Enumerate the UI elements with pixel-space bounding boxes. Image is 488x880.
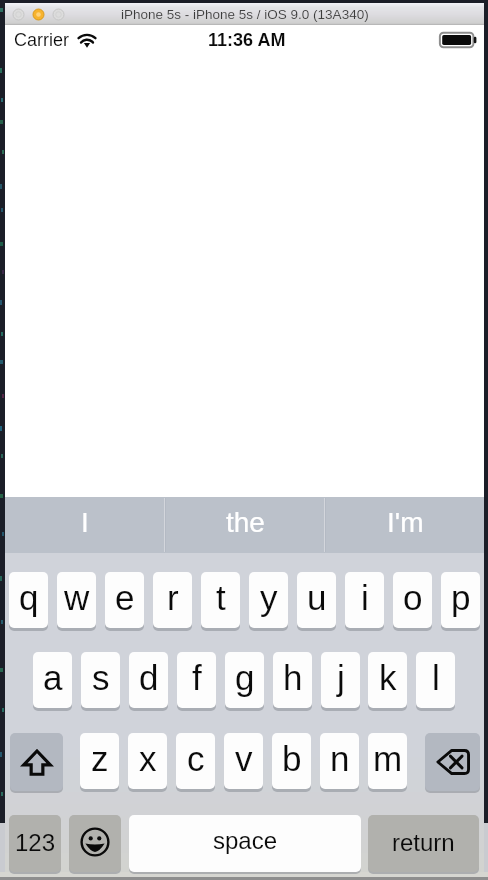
staticText: s bbox=[92, 658, 110, 697]
staticText: Carrier bbox=[14, 30, 70, 50]
staticText: p bbox=[451, 578, 471, 617]
staticText: m bbox=[373, 739, 403, 778]
staticText: j bbox=[337, 658, 345, 697]
staticText: u bbox=[307, 578, 327, 617]
staticText: y bbox=[260, 578, 278, 617]
staticText: I bbox=[81, 507, 89, 538]
staticText: the bbox=[226, 507, 265, 538]
button[interactable]: m bbox=[368, 733, 407, 791]
button[interactable]: the bbox=[166, 497, 324, 553]
staticText: g bbox=[235, 658, 255, 697]
button[interactable]: c bbox=[176, 733, 215, 791]
button[interactable]: Shift bbox=[10, 733, 63, 793]
button[interactable]: d bbox=[129, 652, 168, 710]
staticText: v bbox=[235, 739, 253, 778]
staticText: space bbox=[213, 827, 278, 854]
button[interactable]: Close window bbox=[13, 9, 24, 20]
button[interactable]: v bbox=[224, 733, 263, 791]
staticText: n bbox=[330, 739, 350, 778]
staticText: f bbox=[192, 658, 202, 697]
button[interactable]: a bbox=[33, 652, 72, 710]
staticText: 123 bbox=[15, 829, 56, 856]
button[interactable]: x bbox=[128, 733, 167, 791]
button[interactable]: Minimise window bbox=[33, 9, 44, 20]
button[interactable]: f bbox=[177, 652, 216, 710]
staticText: I'm bbox=[387, 507, 424, 538]
button[interactable]: I bbox=[5, 497, 164, 553]
staticText: r bbox=[167, 578, 179, 617]
staticText: t bbox=[216, 578, 226, 617]
button[interactable]: q bbox=[9, 572, 48, 630]
staticText: 11:36 AM bbox=[208, 30, 286, 50]
staticText: l bbox=[432, 658, 440, 697]
button[interactable]: z bbox=[80, 733, 119, 791]
button[interactable]: b bbox=[272, 733, 311, 791]
button[interactable]: space bbox=[129, 815, 361, 874]
button[interactable]: p bbox=[441, 572, 480, 630]
staticText: e bbox=[115, 578, 135, 617]
button[interactable]: l bbox=[416, 652, 455, 710]
button[interactable]: h bbox=[273, 652, 312, 710]
staticText: i bbox=[361, 578, 369, 617]
button[interactable]: g bbox=[225, 652, 264, 710]
button[interactable]: return bbox=[368, 815, 479, 874]
button[interactable]: n bbox=[320, 733, 359, 791]
button[interactable]: Emoji bbox=[69, 815, 121, 874]
button[interactable]: t bbox=[201, 572, 240, 630]
button[interactable]: 123 bbox=[9, 815, 61, 874]
staticText: x bbox=[139, 739, 157, 778]
button[interactable]: i bbox=[345, 572, 384, 630]
staticText: a bbox=[43, 658, 63, 697]
staticText: return bbox=[392, 829, 455, 856]
button[interactable]: s bbox=[81, 652, 120, 710]
button[interactable]: o bbox=[393, 572, 432, 630]
staticText: b bbox=[282, 739, 302, 778]
staticText: o bbox=[403, 578, 423, 617]
button[interactable]: y bbox=[249, 572, 288, 630]
button[interactable]: Backspace bbox=[425, 733, 480, 793]
button[interactable]: u bbox=[297, 572, 336, 630]
button[interactable]: r bbox=[153, 572, 192, 630]
button[interactable]: w bbox=[57, 572, 96, 630]
staticText: q bbox=[19, 578, 39, 617]
staticText: iPhone 5s - iPhone 5s / iOS 9.0 (13A340) bbox=[121, 7, 369, 22]
button[interactable]: j bbox=[321, 652, 360, 710]
staticText: w bbox=[64, 578, 90, 617]
staticText: c bbox=[187, 739, 205, 778]
staticText: k bbox=[379, 658, 397, 697]
button[interactable]: Zoom window bbox=[53, 9, 64, 20]
staticText: h bbox=[283, 658, 303, 697]
button[interactable]: I'm bbox=[326, 497, 484, 553]
button[interactable]: k bbox=[368, 652, 407, 710]
staticText: d bbox=[139, 658, 159, 697]
staticText: z bbox=[91, 739, 109, 778]
button[interactable]: e bbox=[105, 572, 144, 630]
